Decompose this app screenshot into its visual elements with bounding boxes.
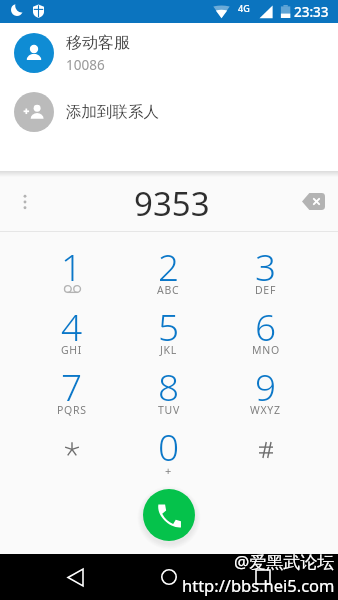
- staticText: JKL: [160, 343, 177, 357]
- staticText: 添加到联系人: [66, 102, 159, 122]
- staticText: 7: [61, 361, 83, 411]
- staticText: 4: [61, 301, 83, 351]
- button[interactable]: 添加到联系人: [0, 83, 338, 141]
- staticText: 5: [158, 301, 180, 351]
- staticText: 0: [158, 421, 180, 471]
- staticText: http://bbs.hei5.com: [182, 574, 335, 596]
- button[interactable]: Back: [52, 554, 98, 600]
- staticText: WXYZ: [250, 403, 281, 417]
- button[interactable]: 0: [120, 420, 217, 480]
- staticText: 10086: [66, 56, 105, 74]
- button[interactable]: 4: [24, 300, 120, 360]
- staticText: 6: [255, 301, 277, 351]
- button[interactable]: 1: [24, 240, 120, 300]
- button[interactable]: 9: [217, 360, 314, 420]
- button[interactable]: [217, 420, 314, 480]
- button[interactable]: Call: [143, 489, 195, 541]
- staticText: 23:33: [294, 3, 329, 21]
- button[interactable]: [24, 420, 120, 480]
- button[interactable]: More options: [0, 171, 50, 231]
- staticText: TUV: [158, 403, 180, 417]
- button[interactable]: Home: [146, 554, 192, 600]
- button[interactable]: 3: [217, 240, 314, 300]
- button[interactable]: 2: [120, 240, 217, 300]
- staticText: GHI: [61, 343, 83, 357]
- staticText: 移动客服: [66, 33, 130, 53]
- button[interactable]: Recents: [240, 554, 286, 600]
- staticText: 2: [158, 241, 180, 291]
- button[interactable]: 8: [120, 360, 217, 420]
- staticText: 1: [61, 241, 83, 291]
- staticText: DEF: [255, 283, 277, 297]
- button[interactable]: 移动客服: [0, 23, 338, 83]
- staticText: ABC: [157, 283, 180, 297]
- button[interactable]: 6: [217, 300, 314, 360]
- staticText: @爱黑武论坛: [234, 550, 335, 573]
- staticText: 8: [158, 361, 180, 411]
- button[interactable]: 5: [120, 300, 217, 360]
- staticText: 9353: [134, 181, 210, 226]
- button[interactable]: Backspace: [288, 171, 338, 231]
- button[interactable]: 7: [24, 360, 120, 420]
- staticText: 4G: [238, 2, 250, 14]
- staticText: MNO: [252, 343, 280, 357]
- staticText: 9: [255, 361, 277, 411]
- staticText: PQRS: [57, 403, 87, 417]
- staticText: 3: [255, 241, 277, 291]
- staticText: +: [165, 463, 172, 478]
